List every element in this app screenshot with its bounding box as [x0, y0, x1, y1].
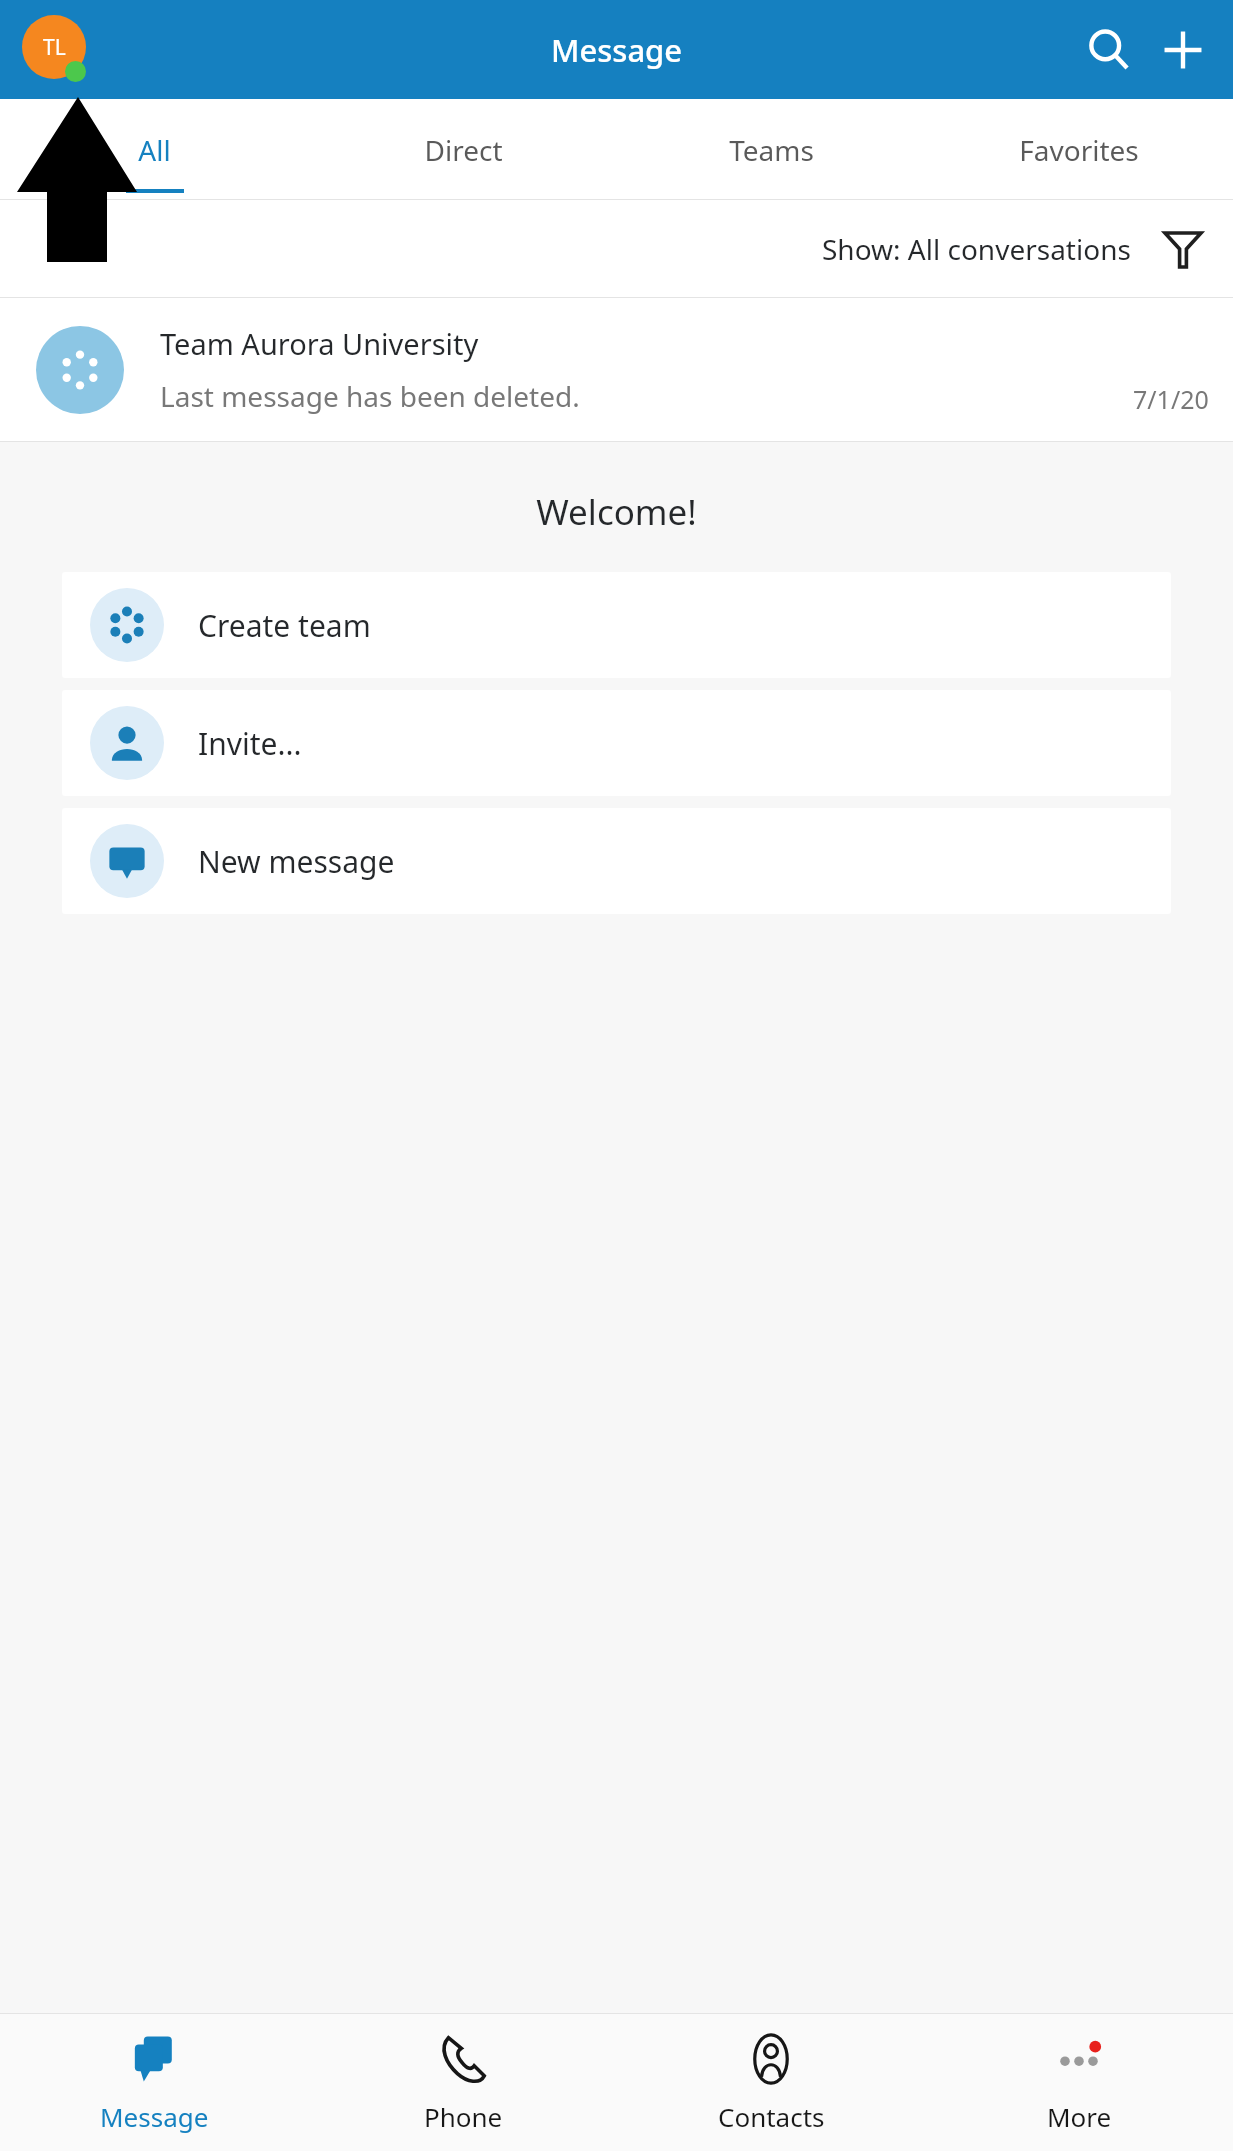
staticText: Create team — [198, 605, 371, 646]
button[interactable]: New — [1151, 18, 1215, 82]
staticText: Favorites — [1019, 131, 1139, 169]
button[interactable]: Contacts — [617, 2014, 925, 2151]
staticText: TL — [43, 33, 66, 62]
button[interactable]: More — [925, 2014, 1233, 2151]
button[interactable]: Profile — [20, 14, 92, 86]
staticText: New message — [198, 841, 395, 882]
staticText: Phone — [424, 2099, 503, 2134]
staticText: All — [138, 131, 171, 169]
button[interactable]: Phone — [309, 2014, 617, 2151]
button[interactable]: All — [0, 99, 309, 200]
staticText: Teams — [729, 131, 814, 169]
button[interactable]: Direct — [309, 99, 617, 200]
button[interactable]: Favorites — [925, 99, 1233, 200]
staticText: Contacts — [718, 2099, 825, 2134]
staticText: Welcome! — [0, 488, 1233, 536]
staticText: Message — [100, 2099, 209, 2134]
staticText: More — [1047, 2099, 1112, 2134]
button[interactable]: Teams — [617, 99, 925, 200]
staticText: Show: All conversations — [822, 230, 1131, 268]
button[interactable]: New message — [62, 808, 1171, 914]
staticText: Invite... — [198, 723, 302, 764]
button[interactable]: Invite... — [62, 690, 1171, 796]
other: Filter — [1155, 221, 1211, 277]
staticText: Direct — [424, 131, 503, 169]
button[interactable]: Message — [0, 2014, 309, 2151]
button[interactable]: Search — [1077, 18, 1141, 82]
button[interactable]: Show: All conversations — [822, 221, 1211, 277]
button[interactable]: Team Aurora University — [0, 298, 1233, 441]
button[interactable]: Create team — [62, 572, 1171, 678]
staticText: Team Aurora University — [160, 324, 479, 363]
staticText: Last message has been deleted. — [160, 377, 580, 415]
staticText: Message — [551, 29, 683, 71]
staticText: 7/1/20 — [1133, 382, 1209, 416]
